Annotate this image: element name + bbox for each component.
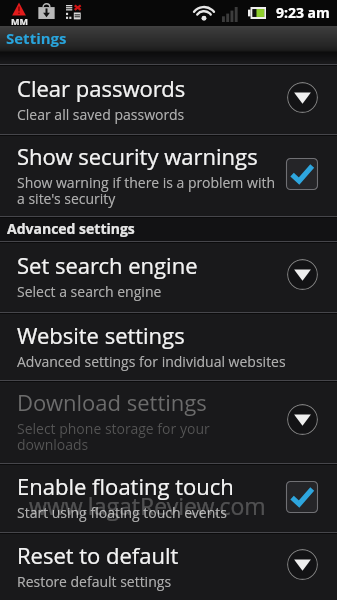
other: Warning notification (12, 2, 26, 16)
other: Mobile signal (222, 7, 239, 22)
button[interactable]: Open options (287, 259, 318, 290)
staticText: Select a search engine (17, 282, 162, 301)
staticText: Clear all saved passwords (17, 105, 185, 124)
staticText: Download settings (17, 387, 207, 417)
staticText: Advanced settings (7, 219, 135, 238)
button[interactable]: Open options (287, 549, 318, 580)
staticText: Advanced settings for individual website… (17, 352, 286, 371)
button[interactable]: Open options (287, 82, 318, 113)
button[interactable]: Set search engine (0, 243, 337, 312)
staticText: Clear passwords (17, 73, 186, 103)
staticText: Enable floating touch (17, 471, 234, 501)
staticText: www.lagatReview.com (29, 490, 266, 521)
other: Sync error (66, 5, 81, 20)
staticText: Website settings (17, 320, 185, 350)
staticText: Settings (6, 28, 67, 48)
other: Battery (248, 7, 266, 19)
staticText: Reset to default (17, 540, 179, 570)
staticText: Show security warnings (17, 141, 258, 171)
button[interactable]: Show security warnings (0, 136, 337, 216)
staticText: 9:23 am (276, 3, 330, 22)
staticText: MM (11, 15, 28, 27)
button[interactable]: Reset to default (0, 534, 337, 600)
button[interactable]: Enable floating touch (0, 465, 337, 532)
staticText: Show warning if there is a problem with … (17, 173, 275, 208)
other: Download (38, 3, 55, 20)
button[interactable]: Website settings (0, 314, 337, 380)
staticText: Select phone storage for your downloads (17, 419, 210, 454)
button[interactable]: Toggle setting (286, 481, 318, 513)
button[interactable]: Toggle setting (286, 158, 318, 190)
other: Wi-Fi (195, 5, 213, 21)
staticText: Restore default settings (17, 572, 172, 591)
staticText: Start using floating touch events (17, 503, 227, 522)
button[interactable]: Clear passwords (0, 66, 337, 134)
staticText: Set search engine (17, 250, 198, 280)
button[interactable]: Download settings (0, 382, 337, 463)
button[interactable]: Open options (287, 404, 318, 435)
